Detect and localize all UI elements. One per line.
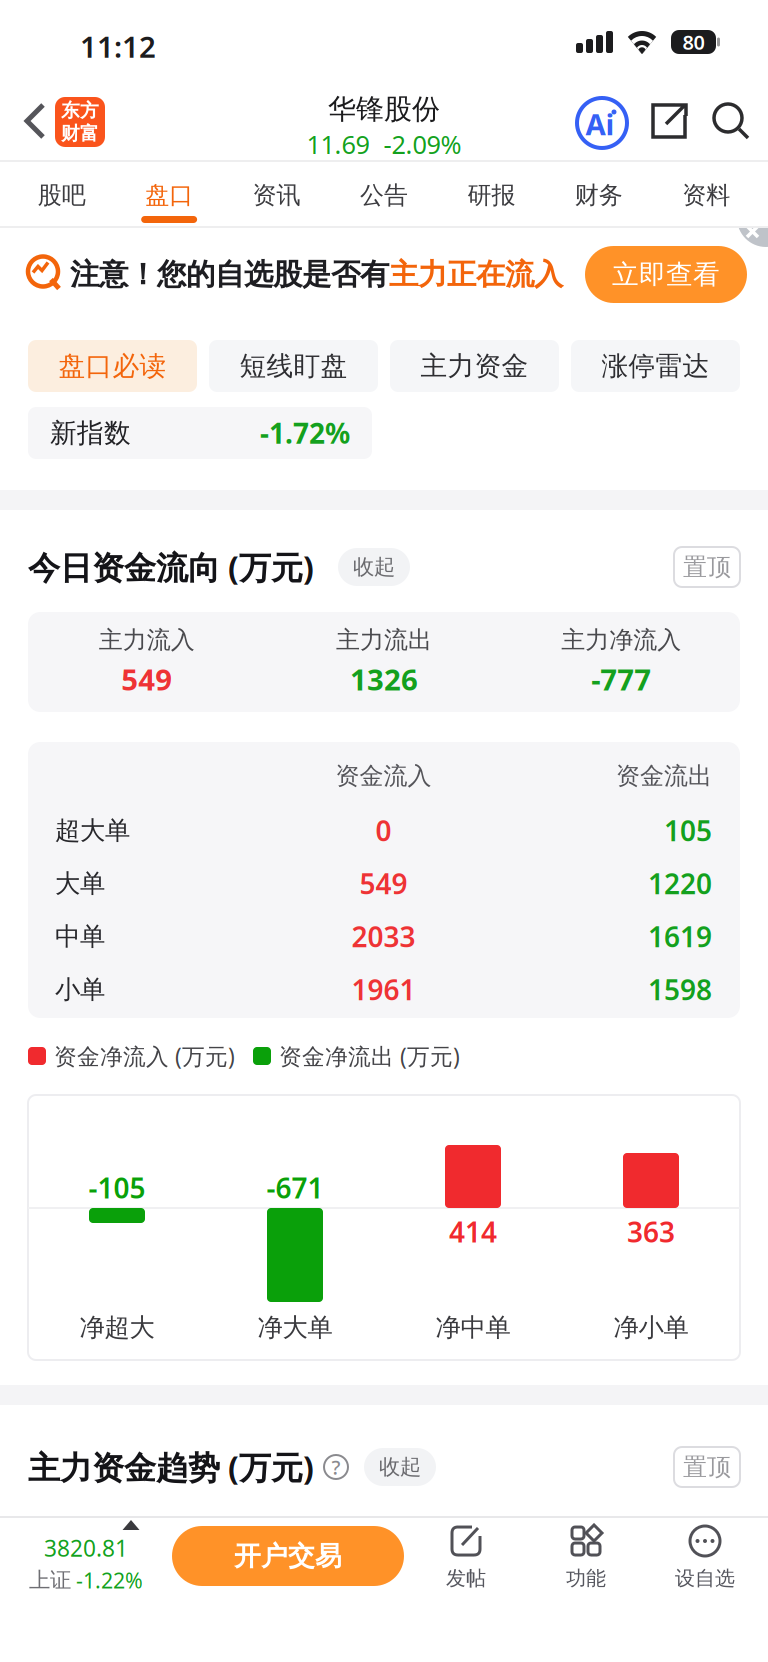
- staticText: 363: [627, 1213, 675, 1250]
- staticText: -777: [591, 660, 651, 699]
- staticText: 注意！您的自选股是否有: [70, 256, 389, 292]
- staticText: 1619: [648, 918, 712, 955]
- staticText: 净中单: [435, 1312, 510, 1343]
- staticText: ?: [331, 1454, 340, 1480]
- button[interactable]: 3820.81: [0, 1520, 172, 1594]
- staticText: 财富: [61, 122, 99, 145]
- button[interactable]: 收起: [364, 1448, 436, 1486]
- staticText: 主力流出: [336, 625, 432, 655]
- staticText: 东方: [61, 99, 99, 122]
- staticText: 置顶: [683, 1452, 731, 1482]
- staticText: 资金流出: [616, 761, 712, 791]
- button[interactable]: 研报: [438, 162, 545, 226]
- staticText: 涨停雷达: [601, 350, 709, 382]
- staticText: 上证: [29, 1567, 71, 1593]
- button[interactable]: [712, 228, 768, 268]
- button[interactable]: 功能: [541, 1525, 631, 1591]
- button[interactable]: 涨停雷达: [571, 340, 740, 392]
- staticText: 短线盯盘: [239, 350, 347, 382]
- staticText: Ai: [585, 104, 614, 143]
- button[interactable]: 盘口: [115, 162, 223, 226]
- staticText: 开户交易: [234, 1540, 342, 1572]
- button[interactable]: 立即查看: [585, 246, 747, 303]
- button[interactable]: 开户交易: [172, 1526, 404, 1586]
- staticText: -105: [88, 1169, 145, 1206]
- button[interactable]: 短线盯盘: [209, 340, 378, 392]
- staticText: 资金流入: [335, 761, 431, 791]
- staticText: 研报: [467, 180, 515, 210]
- staticText: 资金净流入 (万元): [54, 1041, 235, 1071]
- button[interactable]: 财务: [545, 162, 652, 226]
- staticText: 净大单: [257, 1312, 332, 1343]
- staticText: -671: [266, 1169, 323, 1206]
- button[interactable]: 资料: [653, 162, 760, 226]
- button[interactable]: 置顶: [674, 547, 740, 587]
- staticText: 资讯: [253, 180, 301, 210]
- staticText: 超大单: [55, 815, 130, 846]
- staticText: 股吧: [38, 180, 86, 210]
- staticText: 1326: [350, 660, 418, 699]
- staticText: 设自选: [675, 1566, 735, 1591]
- staticText: 净小单: [613, 1312, 688, 1343]
- staticText: 414: [449, 1213, 497, 1250]
- staticText: -1.72%: [260, 414, 350, 452]
- staticText: 今日资金流向 (万元): [28, 546, 314, 588]
- staticText: 净超大: [79, 1312, 154, 1343]
- button[interactable]: [651, 103, 688, 140]
- button[interactable]: 发帖: [421, 1525, 511, 1591]
- staticText: 收起: [379, 1454, 421, 1480]
- staticText: 0: [375, 812, 391, 849]
- staticText: 主力资金趋势 (万元): [28, 1446, 314, 1488]
- button[interactable]: Ai: [577, 98, 627, 148]
- button[interactable]: [23, 103, 47, 139]
- button[interactable]: 盘口必读: [28, 340, 197, 392]
- staticText: 资金净流出 (万元): [279, 1041, 460, 1071]
- staticText: 11.69 -2.09%: [306, 127, 461, 161]
- staticText: 立即查看: [612, 258, 720, 291]
- button[interactable]: 股吧: [8, 162, 115, 226]
- button[interactable]: 新指数: [28, 407, 372, 459]
- staticText: 置顶: [683, 552, 731, 582]
- staticText: 中单: [55, 921, 105, 952]
- staticText: 2033: [351, 918, 415, 955]
- staticText: 公告: [360, 180, 408, 210]
- button[interactable]: 东方: [55, 97, 105, 147]
- button[interactable]: 主力资金: [390, 340, 559, 392]
- staticText: 资料: [682, 180, 730, 210]
- staticText: 3820.81: [44, 1533, 128, 1563]
- staticText: 发帖: [446, 1566, 486, 1591]
- staticText: 新指数: [50, 417, 131, 449]
- staticText: 80: [682, 29, 704, 55]
- staticText: 小单: [55, 974, 105, 1005]
- staticText: 盘口: [145, 180, 193, 210]
- staticText: 财务: [575, 180, 623, 210]
- staticText: 主力净流入: [561, 625, 681, 655]
- staticText: 1220: [648, 865, 712, 902]
- staticText: 11:12: [80, 27, 156, 66]
- staticText: 收起: [353, 554, 395, 580]
- staticText: 549: [121, 660, 172, 699]
- button[interactable]: 公告: [330, 162, 438, 226]
- staticText: 华锋股份: [328, 92, 440, 126]
- button[interactable]: 置顶: [674, 1447, 740, 1487]
- button[interactable]: 设自选: [660, 1525, 750, 1591]
- staticText: 1961: [351, 971, 415, 1008]
- button[interactable]: [712, 102, 750, 140]
- staticText: -1.22%: [76, 1566, 143, 1594]
- staticText: 主力资金: [420, 350, 528, 382]
- button[interactable]: 资讯: [223, 162, 330, 226]
- staticText: 1598: [648, 971, 712, 1008]
- staticText: 549: [359, 865, 407, 902]
- staticText: 功能: [566, 1566, 606, 1591]
- staticText: 主力正在流入: [389, 256, 563, 292]
- staticText: 大单: [55, 868, 105, 899]
- button[interactable]: 收起: [338, 548, 410, 586]
- staticText: 主力流入: [99, 625, 195, 655]
- staticText: 盘口必读: [58, 350, 166, 382]
- staticText: 105: [664, 812, 712, 849]
